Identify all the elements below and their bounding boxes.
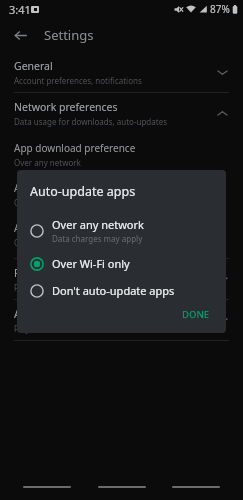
staticText: Network preferences — [14, 100, 118, 114]
staticText: Family — [14, 266, 46, 280]
button[interactable]: General — [0, 52, 243, 92]
staticText: Data charges may apply — [52, 233, 143, 244]
button[interactable]: Home — [94, 480, 150, 494]
staticText: Over Wi-Fi only — [52, 256, 130, 271]
staticText: Auto-update apps — [14, 181, 99, 195]
staticText: Auto-play videos — [14, 221, 92, 235]
staticText: Over any network — [14, 157, 81, 168]
staticText: About — [14, 307, 44, 321]
button[interactable]: Back — [19, 480, 75, 494]
button[interactable]: Network preferences — [0, 93, 243, 133]
button[interactable]: Auto-play videos — [0, 221, 243, 248]
staticText: 87% — [210, 2, 230, 16]
staticText: Play store, build version, device certif… — [14, 323, 179, 334]
button[interactable]: Over any network — [17, 215, 226, 246]
staticText: App download preference — [14, 141, 136, 155]
button[interactable]: Back — [7, 22, 33, 48]
staticText: Over Wi-Fi only — [14, 237, 71, 248]
staticText: Don't auto-update apps — [52, 283, 175, 298]
staticText: Account preferences, notifications — [14, 75, 142, 86]
staticText: Settings — [44, 26, 94, 44]
button[interactable]: Over Wi-Fi only — [17, 254, 226, 273]
staticText: Data usage for downloads, auto-updates — [14, 116, 167, 127]
staticText: General — [14, 59, 53, 73]
button[interactable]: Recents — [168, 480, 224, 494]
button[interactable]: DONE — [177, 305, 215, 324]
staticText: Parental control, parent guide — [14, 282, 127, 293]
button[interactable]: Auto-update apps — [0, 181, 243, 208]
staticText: Auto-update apps — [30, 183, 136, 200]
staticText: Over Wi-Fi only — [14, 197, 71, 208]
button[interactable]: App download preference — [0, 141, 243, 168]
button[interactable]: About — [0, 300, 243, 340]
button[interactable]: Don't auto-update apps — [17, 281, 226, 300]
staticText: 3:41 — [9, 2, 31, 17]
button[interactable]: Family — [0, 259, 243, 299]
staticText: Over any network — [52, 217, 144, 232]
staticText: DONE — [182, 308, 210, 321]
